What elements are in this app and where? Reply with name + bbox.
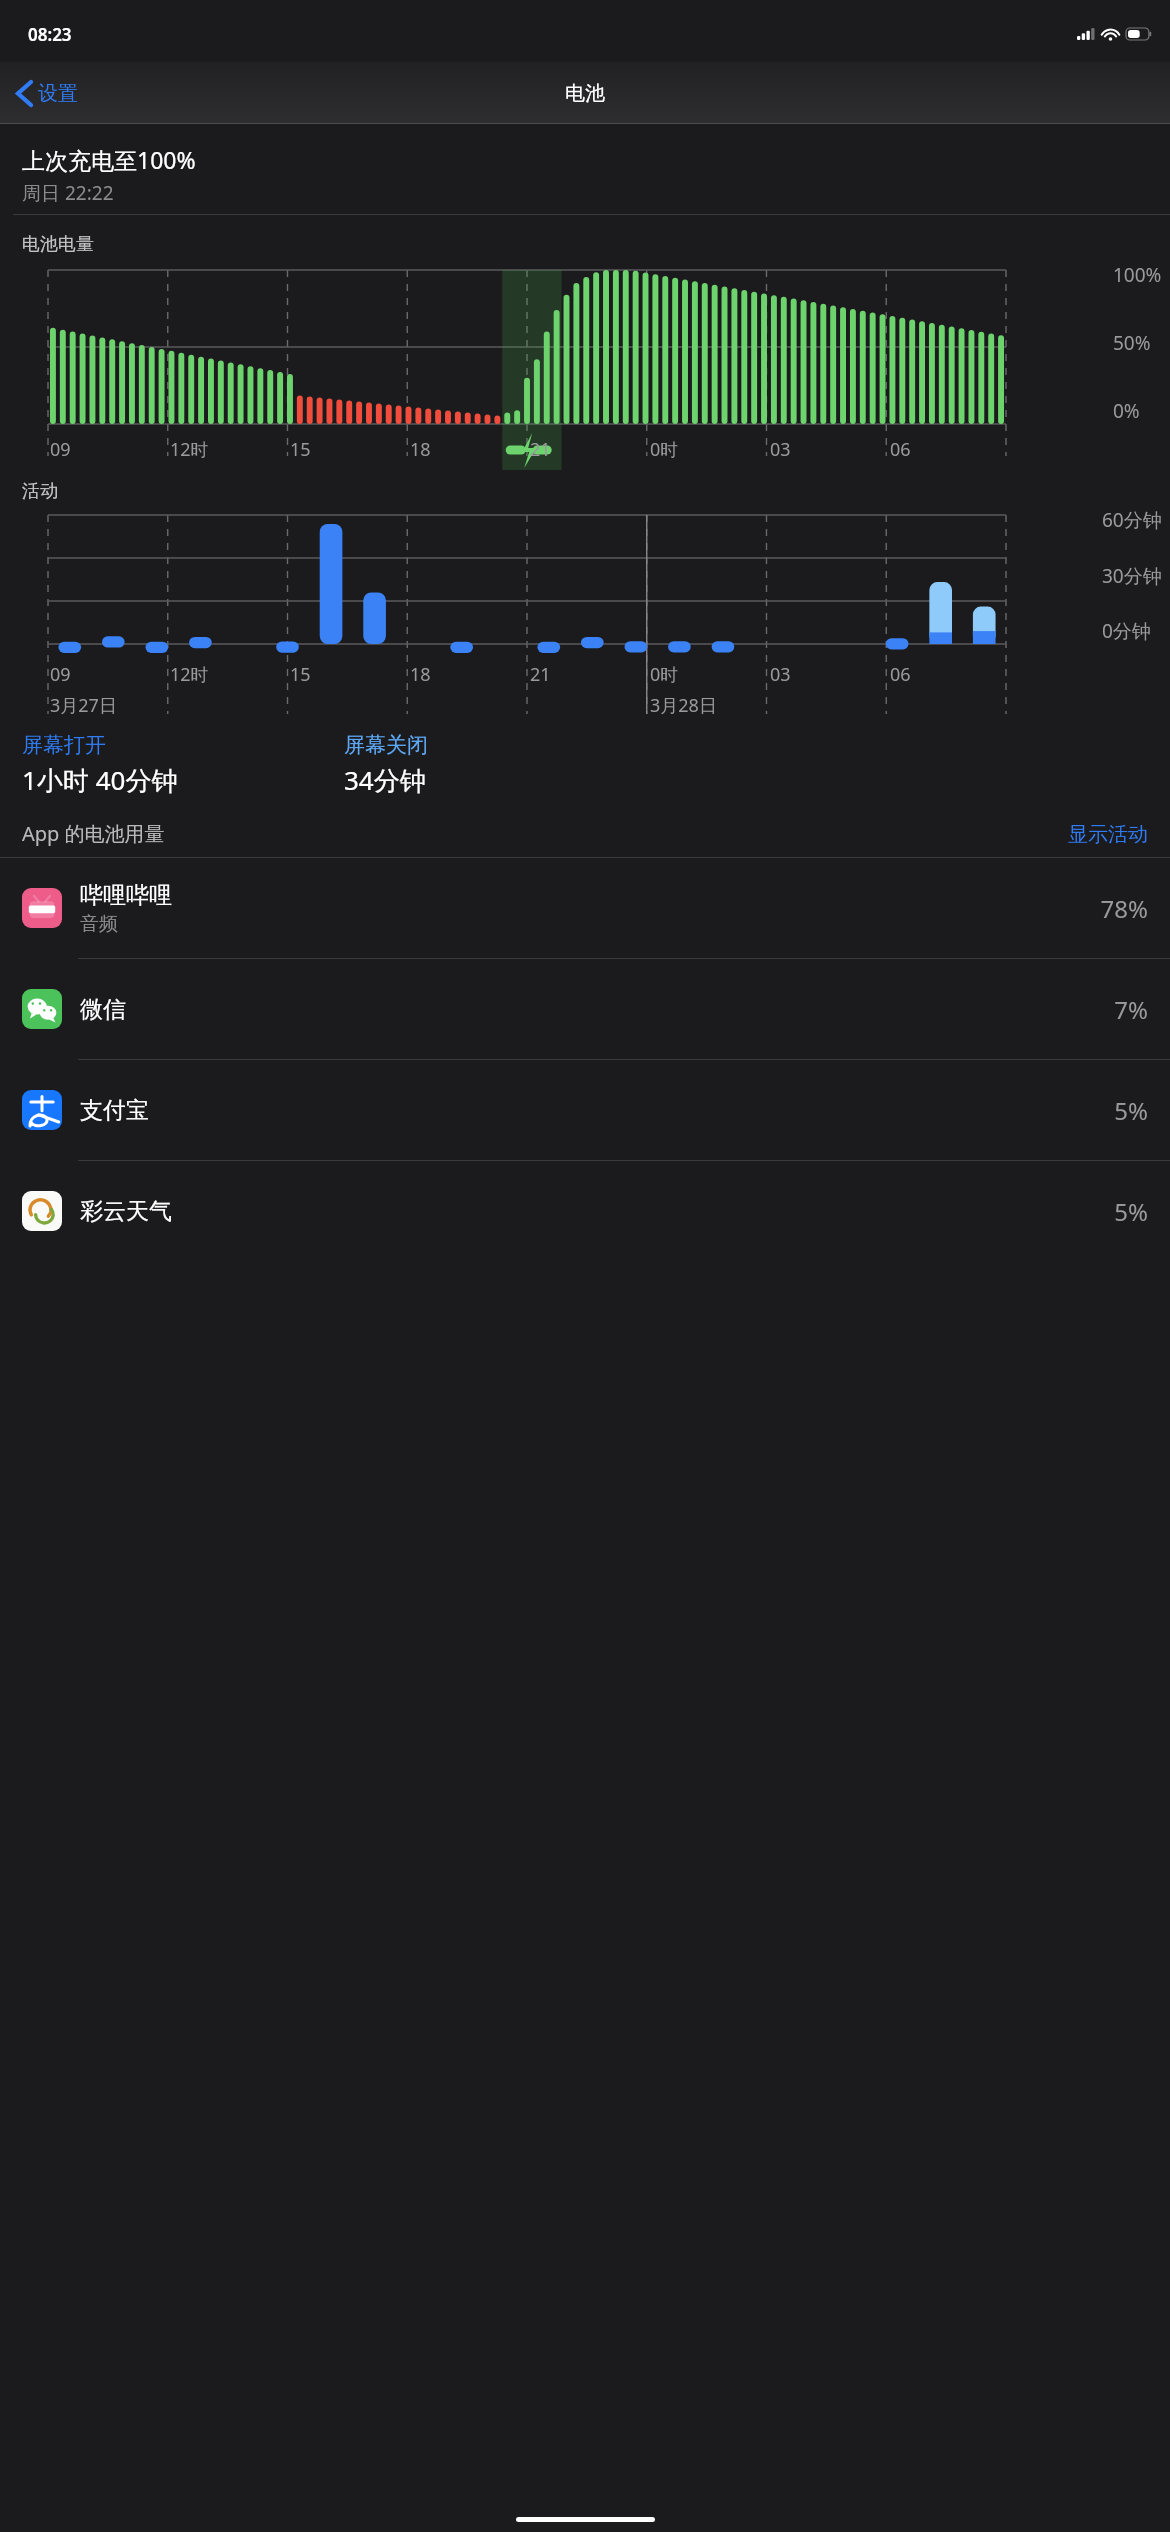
staticText: 彩云天气 (80, 1197, 172, 1226)
staticText: 18 (410, 437, 431, 462)
staticText: 06 (890, 662, 911, 687)
staticText: App 的电池用量 (22, 820, 165, 847)
button[interactable]: 微信 (0, 959, 1170, 1059)
staticText: 100% (1113, 262, 1162, 288)
staticText: 周日 22:22 (22, 180, 114, 206)
staticText: 15 (290, 437, 311, 462)
staticText: 3月28日 (650, 693, 717, 718)
button[interactable]: 显示活动 (1068, 822, 1148, 847)
staticText: 0时 (650, 662, 679, 687)
staticText: 60分钟 (1102, 507, 1162, 533)
staticText: 7% (1114, 993, 1148, 1026)
staticText: 06 (890, 437, 911, 462)
staticText: 03 (770, 662, 791, 687)
staticText: 78% (1100, 892, 1148, 925)
staticText: 50% (1113, 330, 1151, 356)
staticText: 显示活动 (1068, 822, 1148, 847)
staticText: 30分钟 (1102, 563, 1162, 589)
staticText: 3月27日 (50, 693, 117, 718)
staticText: 屏幕打开 (22, 732, 106, 758)
staticText: 12时 (170, 437, 209, 462)
staticText: 21 (530, 662, 551, 687)
staticText: 34分钟 (344, 762, 426, 798)
staticText: 支付宝 (80, 1096, 149, 1125)
staticText: 15 (290, 662, 311, 687)
staticText: 设置 (38, 81, 78, 106)
staticText: 0分钟 (1102, 618, 1151, 644)
staticText: 18 (410, 662, 431, 687)
staticText: 09 (50, 437, 71, 462)
staticText: 5% (1114, 1195, 1148, 1228)
button[interactable]: 哔哩哔哩 (0, 858, 1170, 958)
staticText: 0% (1113, 398, 1140, 424)
staticText: 屏幕关闭 (344, 732, 428, 758)
button[interactable]: 彩云天气 (0, 1161, 1170, 1261)
staticText: 21 (530, 437, 551, 462)
staticText: 03 (770, 437, 791, 462)
staticText: 音频 (80, 912, 118, 936)
button[interactable]: 支付宝 (0, 1060, 1170, 1160)
staticText: 09 (50, 662, 71, 687)
staticText: 电池电量 (22, 233, 94, 256)
staticText: 08:23 (28, 23, 72, 46)
staticText: 12时 (170, 662, 209, 687)
staticText: 上次充电至100% (22, 144, 196, 175)
staticText: 5% (1114, 1094, 1148, 1127)
staticText: 1小时 40分钟 (22, 762, 178, 798)
staticText: 电池 (565, 81, 605, 106)
staticText: 0时 (650, 437, 679, 462)
staticText: 哔哩哔哩 (80, 881, 172, 910)
staticText: 微信 (80, 995, 126, 1024)
button[interactable]: 设置 (12, 75, 84, 112)
staticText: 活动 (22, 480, 58, 503)
